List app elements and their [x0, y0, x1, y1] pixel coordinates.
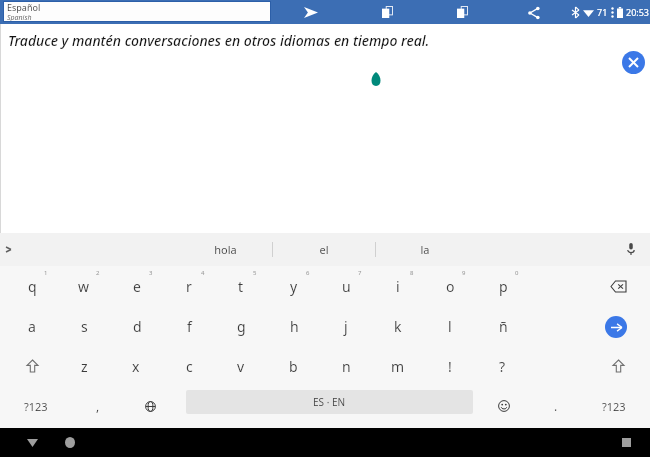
button[interactable]: k — [372, 306, 424, 346]
button[interactable]: Shift — [6, 346, 58, 386]
button[interactable]: u — [320, 266, 372, 306]
staticText: y — [290, 277, 298, 296]
staticText: 6 — [306, 269, 310, 277]
staticText: m — [391, 357, 405, 376]
button[interactable]: . — [530, 386, 582, 426]
button[interactable]: Español — [3, 1, 271, 22]
staticText: 71 — [597, 6, 608, 18]
button[interactable]: g — [215, 306, 267, 346]
button[interactable]: Emoji — [478, 386, 530, 426]
button[interactable]: Voice input — [622, 240, 640, 258]
staticText: u — [342, 277, 351, 296]
button[interactable]: ?123 — [584, 386, 644, 426]
button[interactable]: f — [163, 306, 215, 346]
button[interactable]: Enter — [605, 316, 627, 338]
staticText: k — [394, 317, 402, 336]
button[interactable]: c — [163, 346, 215, 386]
staticText: v — [237, 357, 245, 376]
button[interactable]: el — [289, 233, 359, 266]
staticText: el — [319, 242, 329, 257]
staticText: hola — [214, 242, 237, 257]
button[interactable]: e — [111, 266, 163, 306]
button[interactable]: , — [72, 386, 124, 426]
staticText: 20:53 — [626, 6, 650, 18]
button[interactable]: Expand suggestions — [0, 241, 16, 257]
staticText: 8 — [410, 269, 414, 277]
button[interactable]: Share — [524, 3, 544, 23]
button[interactable]: s — [58, 306, 110, 346]
staticText: j — [344, 317, 348, 336]
button[interactable]: hola — [190, 233, 260, 266]
button[interactable]: Send — [300, 2, 322, 22]
staticText: ?123 — [24, 399, 48, 414]
staticText: 3 — [149, 269, 153, 277]
staticText: e — [133, 277, 141, 296]
staticText: ñ — [499, 317, 508, 336]
button[interactable]: z — [58, 346, 110, 386]
staticText: l — [448, 317, 452, 336]
staticText: 2 — [96, 269, 100, 277]
staticText: z — [81, 357, 88, 376]
staticText: r — [186, 277, 192, 296]
staticText: ?123 — [602, 399, 626, 414]
staticText: b — [289, 357, 298, 376]
staticText: i — [396, 277, 400, 296]
button[interactable]: i — [372, 266, 424, 306]
staticText: s — [81, 317, 88, 336]
staticText: g — [237, 317, 246, 336]
staticText: f — [187, 317, 192, 336]
button[interactable]: p — [477, 266, 529, 306]
button[interactable]: Change language — [124, 386, 176, 426]
staticText: Traduce y mantén conversaciones en otros… — [8, 31, 430, 50]
button[interactable]: r — [163, 266, 215, 306]
staticText: Spanish — [7, 13, 32, 22]
button[interactable]: b — [267, 346, 319, 386]
button[interactable]: l — [424, 306, 476, 346]
button[interactable]: Back — [14, 428, 50, 457]
staticText: Español — [7, 1, 41, 13]
staticText: n — [342, 357, 351, 376]
button[interactable]: m — [372, 346, 424, 386]
staticText: ES · EN — [313, 395, 346, 409]
button[interactable]: w — [58, 266, 110, 306]
button[interactable]: h — [268, 306, 320, 346]
button[interactable]: d — [111, 306, 163, 346]
staticText: ! — [448, 357, 452, 376]
button[interactable]: Backspace — [592, 266, 644, 306]
button[interactable]: x — [110, 346, 162, 386]
button[interactable]: ES · EN — [186, 390, 473, 414]
staticText: la — [420, 242, 430, 257]
button[interactable]: y — [268, 266, 320, 306]
staticText: 7 — [358, 269, 362, 277]
staticText: , — [96, 398, 100, 414]
staticText: q — [28, 277, 37, 296]
button[interactable]: Recent apps — [608, 428, 644, 457]
button[interactable]: Paste — [453, 4, 471, 20]
button[interactable]: ?123 — [6, 386, 66, 426]
staticText: w — [78, 277, 90, 296]
staticText: t — [238, 277, 244, 296]
button[interactable]: ? — [476, 346, 528, 386]
button[interactable]: Shift — [592, 346, 644, 386]
staticText: x — [132, 357, 140, 376]
button[interactable]: t — [215, 266, 267, 306]
button[interactable]: Copy — [378, 4, 396, 20]
button[interactable]: j — [320, 306, 372, 346]
button[interactable]: Home — [52, 428, 88, 457]
staticText: 9 — [462, 269, 466, 277]
button[interactable]: v — [215, 346, 267, 386]
button[interactable]: Close — [622, 51, 645, 74]
button[interactable]: o — [424, 266, 476, 306]
button[interactable]: ñ — [477, 306, 529, 346]
staticText: a — [28, 317, 36, 336]
staticText: h — [290, 317, 299, 336]
staticText: c — [186, 357, 193, 376]
staticText: o — [446, 277, 455, 296]
staticText: 4 — [201, 269, 205, 277]
button[interactable]: la — [390, 233, 460, 266]
button[interactable]: n — [320, 346, 372, 386]
button[interactable]: q — [6, 266, 58, 306]
button[interactable]: ! — [424, 346, 476, 386]
staticText: 0 — [515, 269, 519, 277]
button[interactable]: a — [6, 306, 58, 346]
